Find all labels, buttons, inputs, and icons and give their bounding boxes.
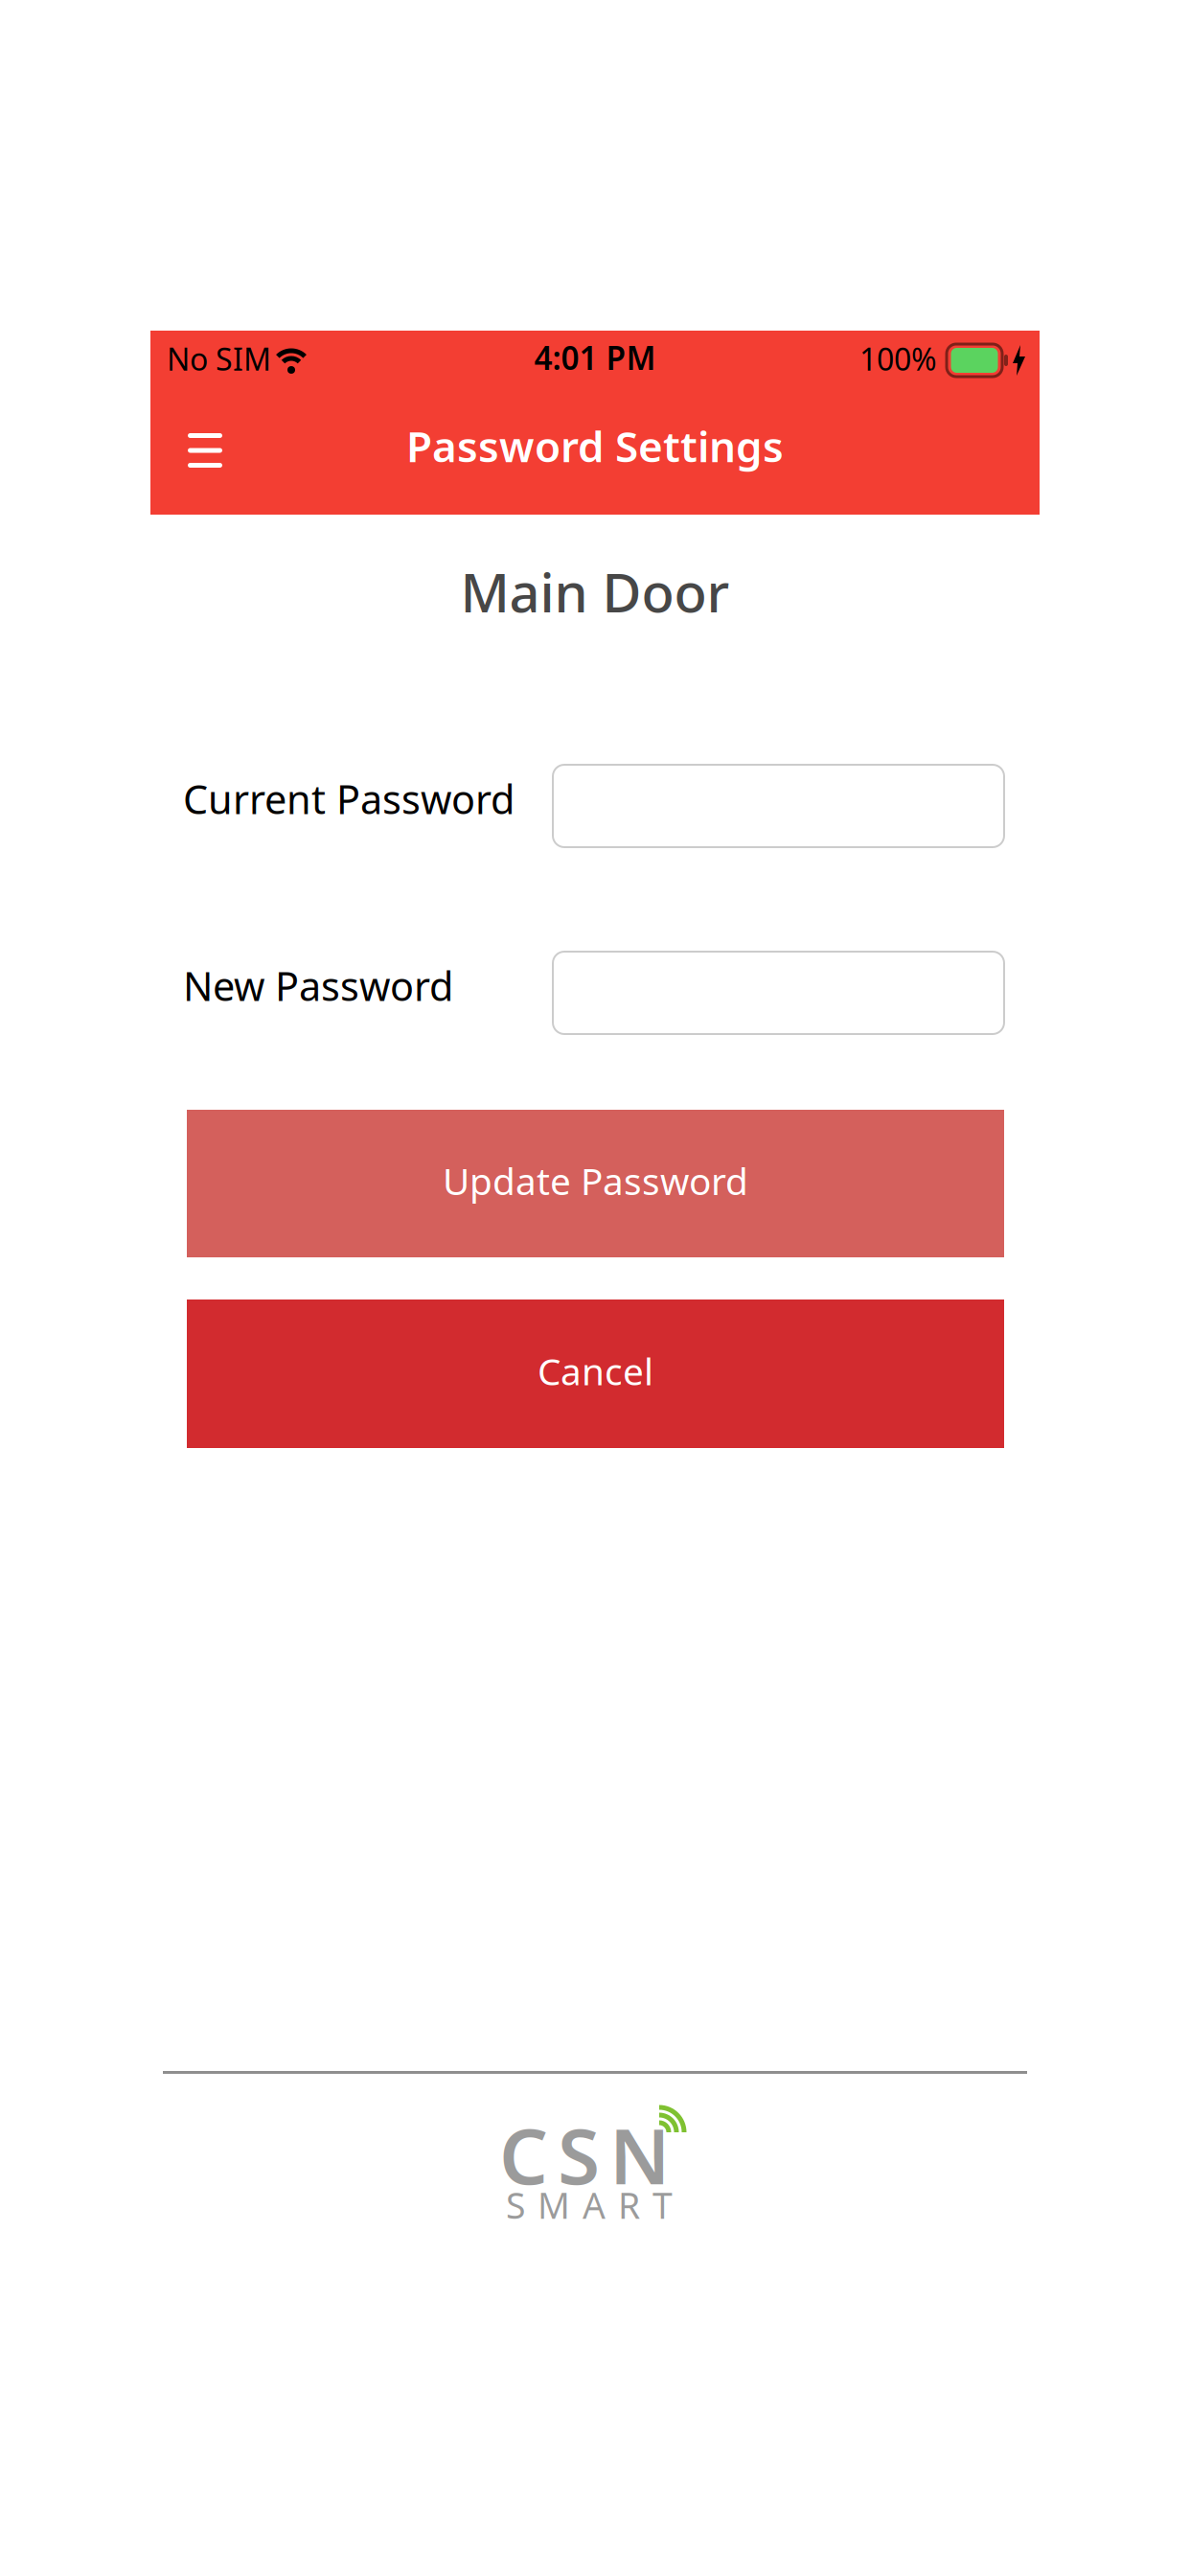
staticText: CSN: [499, 2104, 670, 2205]
button[interactable]: Cancel: [187, 1299, 1004, 1448]
staticText: Current Password: [183, 772, 515, 825]
staticText: Password Settings: [406, 418, 784, 474]
button[interactable]: Update Password: [187, 1110, 1004, 1257]
staticText: New Password: [183, 959, 453, 1012]
staticText: SMART: [506, 2181, 673, 2229]
button[interactable]: Current Password: [553, 765, 1004, 847]
button[interactable]: New Password: [553, 952, 1004, 1034]
staticText: 4:01 PM: [534, 336, 656, 379]
staticText: Update Password: [443, 1156, 748, 1205]
staticText: Cancel: [538, 1346, 653, 1395]
staticText: Main Door: [460, 556, 730, 627]
button[interactable]: Menu: [171, 416, 240, 485]
staticText: 100%: [859, 338, 937, 379]
staticText: No SIM: [167, 338, 271, 379]
